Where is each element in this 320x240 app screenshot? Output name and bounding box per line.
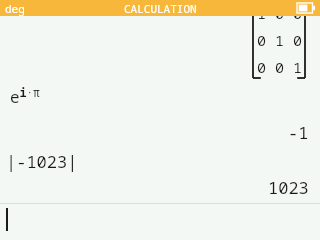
staticText: 0 (257, 57, 267, 77)
staticText: 1023 (268, 176, 309, 199)
staticText: ei·π (10, 84, 41, 108)
staticText: 0 (275, 57, 285, 77)
button[interactable]: 1023 (0, 176, 320, 199)
staticText: 0 (275, 3, 285, 23)
button[interactable]: |-1023| (6, 150, 78, 173)
button[interactable]: deg (5, 1, 25, 16)
staticText: 0 (293, 3, 303, 23)
button[interactable]: Expression input (0, 204, 320, 240)
staticText: CALCULATION (124, 1, 197, 16)
button[interactable]: 1 (250, 2, 310, 80)
button[interactable]: ei·π (10, 84, 41, 108)
button[interactable]: -1 (0, 121, 320, 144)
staticText: |-1023| (6, 150, 78, 173)
staticText: 0 (293, 30, 303, 50)
staticText: 0 (257, 30, 267, 50)
other: Battery (297, 3, 315, 13)
staticText: 1 (293, 57, 303, 77)
staticText: -1 (288, 121, 309, 144)
staticText: 1 (257, 3, 267, 23)
staticText: 1 (275, 30, 285, 50)
